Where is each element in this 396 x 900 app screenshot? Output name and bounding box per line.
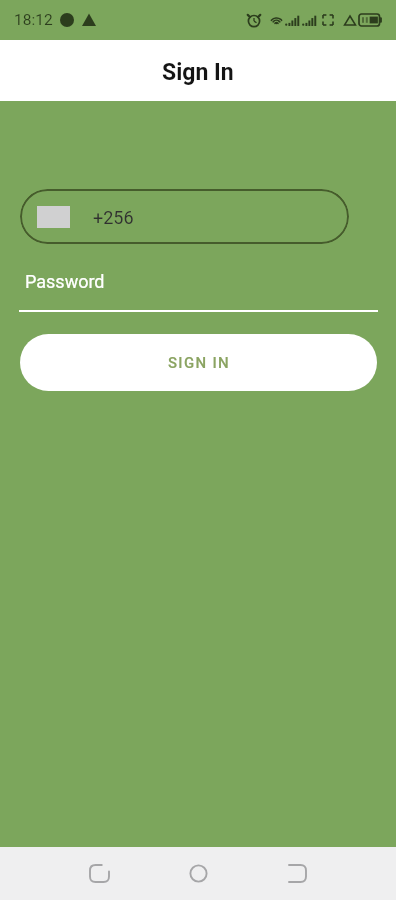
button[interactable]: +256 — [20, 189, 349, 244]
staticText: 18:12 — [14, 11, 53, 29]
button[interactable]: Password — [19, 271, 378, 312]
staticText: +256 — [93, 207, 134, 228]
staticText: Password — [25, 271, 105, 292]
button[interactable]: Back — [264, 847, 331, 900]
staticText: SIGN IN — [168, 354, 230, 372]
button[interactable]: Recent apps — [66, 847, 133, 900]
staticText: Sign In — [162, 59, 234, 86]
button[interactable]: SIGN IN — [20, 334, 377, 391]
button[interactable]: Home — [165, 847, 232, 900]
